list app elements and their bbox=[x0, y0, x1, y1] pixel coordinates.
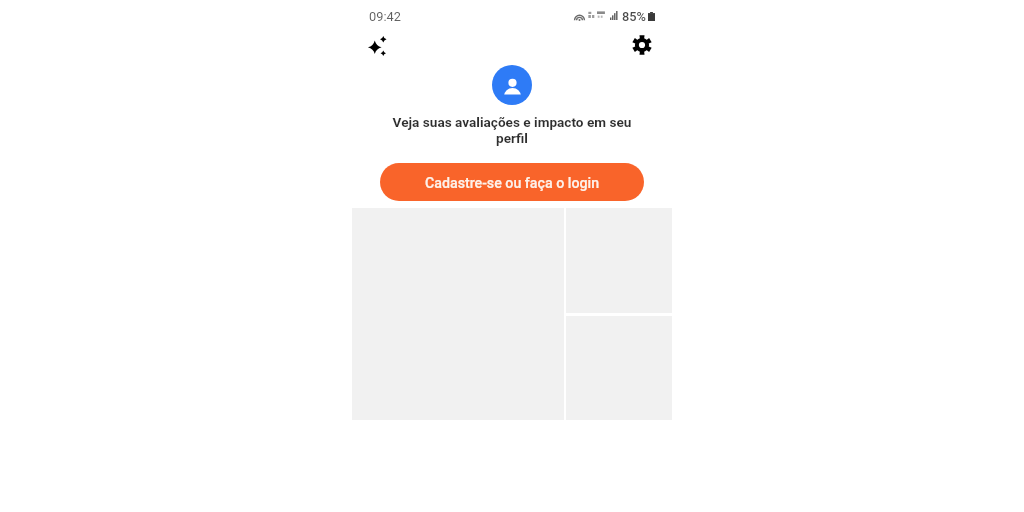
staticText: Cadastre-se ou faça o login bbox=[425, 175, 600, 192]
button[interactable]: Cadastre-se ou faça o login bbox=[380, 163, 644, 201]
staticText: Veja suas avaliações e impacto em seu bbox=[372, 114, 652, 130]
button[interactable]: Profile bbox=[492, 65, 532, 105]
staticText: perfil bbox=[372, 130, 652, 146]
staticText: 09:42 bbox=[369, 9, 401, 24]
staticText: 85% bbox=[622, 9, 646, 24]
button[interactable]: Assistant bbox=[364, 32, 390, 58]
button[interactable]: Settings bbox=[629, 32, 655, 58]
